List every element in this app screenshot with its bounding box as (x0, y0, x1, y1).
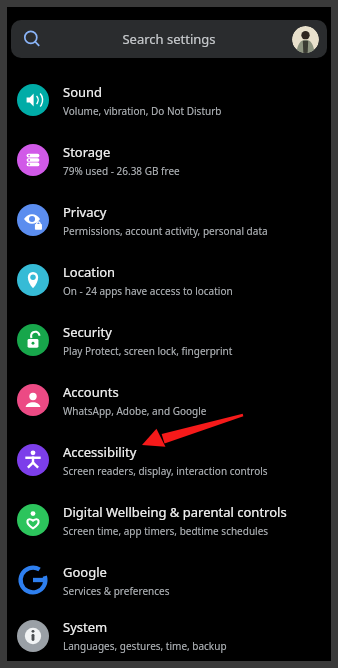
button[interactable]: Accessibility (7, 430, 331, 490)
staticText: Security (63, 323, 112, 341)
staticText: Privacy (63, 203, 107, 221)
staticText: WhatsApp, Adobe, and Google (63, 404, 207, 418)
button[interactable]: Digital Wellbeing & parental controls (7, 490, 331, 550)
staticText: Screen readers, display, interaction con… (63, 464, 268, 478)
button[interactable]: Account (292, 26, 319, 53)
button[interactable]: Accounts (7, 370, 331, 430)
button[interactable]: Privacy (7, 190, 331, 250)
staticText: 79% used - 26.38 GB free (63, 164, 180, 178)
button[interactable]: Sound (7, 70, 331, 130)
staticText: Google (63, 563, 107, 581)
staticText: Languages, gestures, time, backup (63, 639, 227, 653)
button[interactable]: Search settings (11, 20, 327, 58)
staticText: Location (63, 263, 116, 281)
staticText: Sound (63, 83, 103, 101)
staticText: Permissions, account activity, personal … (63, 224, 268, 238)
button[interactable]: Location (7, 250, 331, 310)
button[interactable]: System (7, 610, 331, 661)
staticText: Volume, vibration, Do Not Disturb (63, 104, 222, 118)
staticText: Accounts (63, 383, 119, 401)
button[interactable]: Security (7, 310, 331, 370)
staticText: Digital Wellbeing & parental controls (63, 503, 287, 521)
staticText: On - 24 apps have access to location (63, 284, 233, 298)
staticText: Search settings (122, 30, 216, 48)
staticText: Screen time, app timers, bedtime schedul… (63, 524, 269, 538)
button[interactable]: Google (7, 550, 331, 610)
staticText: Accessibility (63, 443, 137, 461)
staticText: Play Protect, screen lock, fingerprint (63, 344, 233, 358)
staticText: Services & preferences (63, 584, 170, 598)
staticText: Storage (63, 143, 111, 161)
staticText: System (63, 618, 108, 636)
button[interactable]: Storage (7, 130, 331, 190)
other: Search (22, 29, 42, 49)
